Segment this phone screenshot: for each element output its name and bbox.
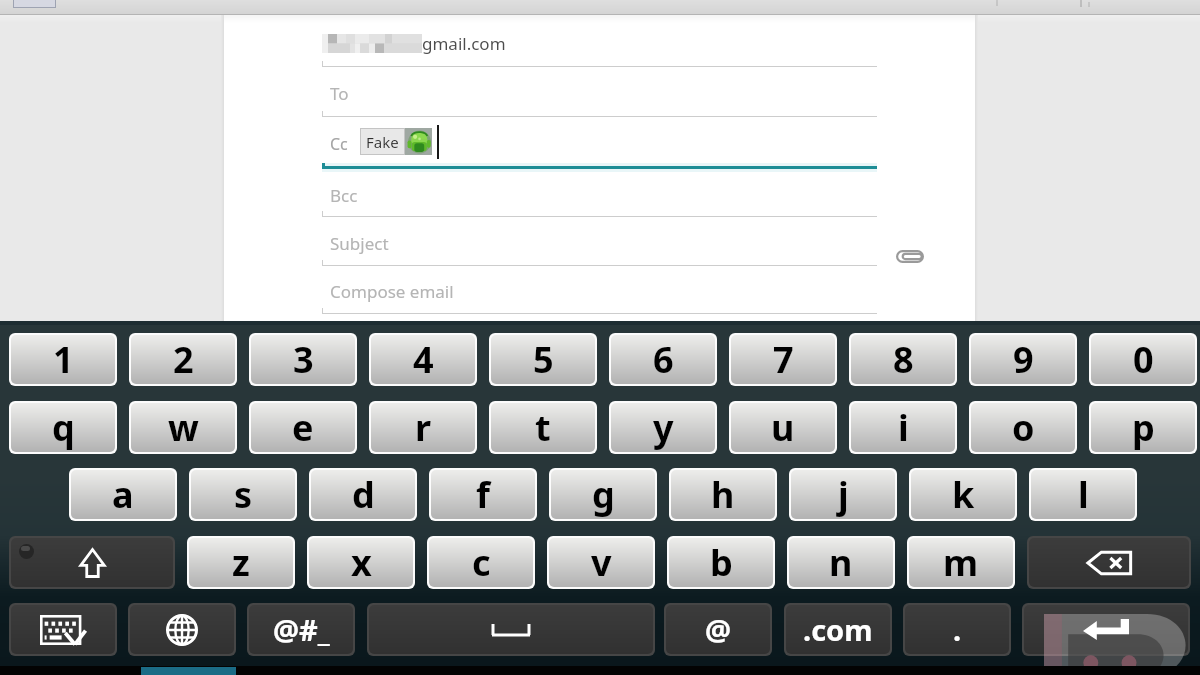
staticText: g [592,470,615,519]
button[interactable]: f [431,470,535,519]
staticText: 6 [653,335,674,384]
button[interactable]: y [611,403,715,452]
button[interactable]: 1 [11,335,115,384]
staticText: x [351,538,372,587]
button[interactable]: a [71,470,175,519]
staticText: Fake [366,132,399,152]
staticText: l [1078,470,1089,519]
button[interactable]: g [551,470,655,519]
button[interactable]: 6 [611,335,715,384]
staticText: m [943,538,979,587]
button[interactable]: e [251,403,355,452]
button[interactable]: l [1031,470,1135,519]
button[interactable]: Change language [130,605,234,654]
button[interactable]: Backspace [1029,538,1189,587]
staticText: 4 [413,335,434,384]
button[interactable]: Shift [11,538,173,587]
button[interactable]: n [789,538,893,587]
staticText: 0 [1133,335,1154,384]
staticText: Bcc [330,184,358,207]
button[interactable]: r [371,403,475,452]
button[interactable]: 8 [851,335,955,384]
button[interactable]: Cc [322,123,877,165]
button[interactable]: i [851,403,955,452]
button[interactable]: 4 [371,335,475,384]
button[interactable]: x [309,538,413,587]
staticText: 8 [893,335,914,384]
button[interactable]: t [491,403,595,452]
staticText: s [234,470,253,519]
button[interactable]: . [905,605,1009,654]
button[interactable]: q [11,403,115,452]
staticText: 1 [53,335,74,384]
button[interactable]: gmail.com [322,22,877,64]
button[interactable]: v [549,538,653,587]
button[interactable]: Attach file [884,234,936,278]
staticText: k [952,470,975,519]
staticText: . [953,610,962,649]
staticText: e [292,403,314,452]
staticText: To [330,82,349,105]
button[interactable]: @ [666,605,770,654]
staticText: 3 [293,335,314,384]
button[interactable]: 7 [731,335,835,384]
staticText: @#_ [273,610,330,649]
staticText: r [415,403,432,452]
staticText: Subject [330,232,389,255]
button[interactable]: j [791,470,895,519]
staticText: a [112,470,134,519]
staticText: @ [705,610,732,649]
button[interactable]: c [429,538,533,587]
button[interactable]: .com [786,605,890,654]
button[interactable]: 3 [251,335,355,384]
staticText: q [52,403,75,452]
button[interactable]: Subject [322,221,877,265]
button[interactable]: b [669,538,773,587]
button[interactable]: p [1091,403,1195,452]
staticText: 7 [773,335,794,384]
button[interactable]: @#_ [249,605,353,654]
button[interactable]: s [191,470,295,519]
staticText: h [711,470,735,519]
staticText: y [653,403,674,452]
staticText: z [232,538,250,587]
button[interactable]: Bcc [322,173,877,217]
staticText: Cc [330,133,348,155]
button[interactable]: Fake [360,128,432,155]
button[interactable]: u [731,403,835,452]
staticText: 9 [1013,335,1034,384]
button[interactable]: Space [369,605,653,654]
button[interactable]: Compose email [322,269,877,313]
button[interactable]: 9 [971,335,1075,384]
button[interactable]: o [971,403,1075,452]
staticText: p [1132,403,1155,452]
staticText: Compose email [330,280,454,303]
button[interactable]: k [911,470,1015,519]
staticText: 5 [533,335,554,384]
staticText: n [829,538,853,587]
staticText: v [591,538,612,587]
button[interactable]: z [189,538,293,587]
button[interactable]: 0 [1091,335,1195,384]
staticText: c [472,538,491,587]
staticText: i [898,403,909,452]
button[interactable]: 5 [491,335,595,384]
staticText: j [838,470,849,519]
staticText: d [352,470,375,519]
button[interactable]: h [671,470,775,519]
staticText: .com [803,610,873,649]
button[interactable]: 2 [131,335,235,384]
button[interactable]: w [131,403,235,452]
button[interactable]: Change keyboard [11,605,115,654]
staticText: f [476,470,490,519]
staticText: t [535,403,551,452]
button[interactable]: d [311,470,415,519]
button[interactable]: m [909,538,1013,587]
staticText: b [710,538,733,587]
button[interactable]: To [322,71,877,115]
staticText: 2 [173,335,194,384]
staticText: u [771,403,795,452]
staticText: w [168,403,199,452]
staticText: o [1012,403,1035,452]
button[interactable]: Enter [1024,605,1188,654]
